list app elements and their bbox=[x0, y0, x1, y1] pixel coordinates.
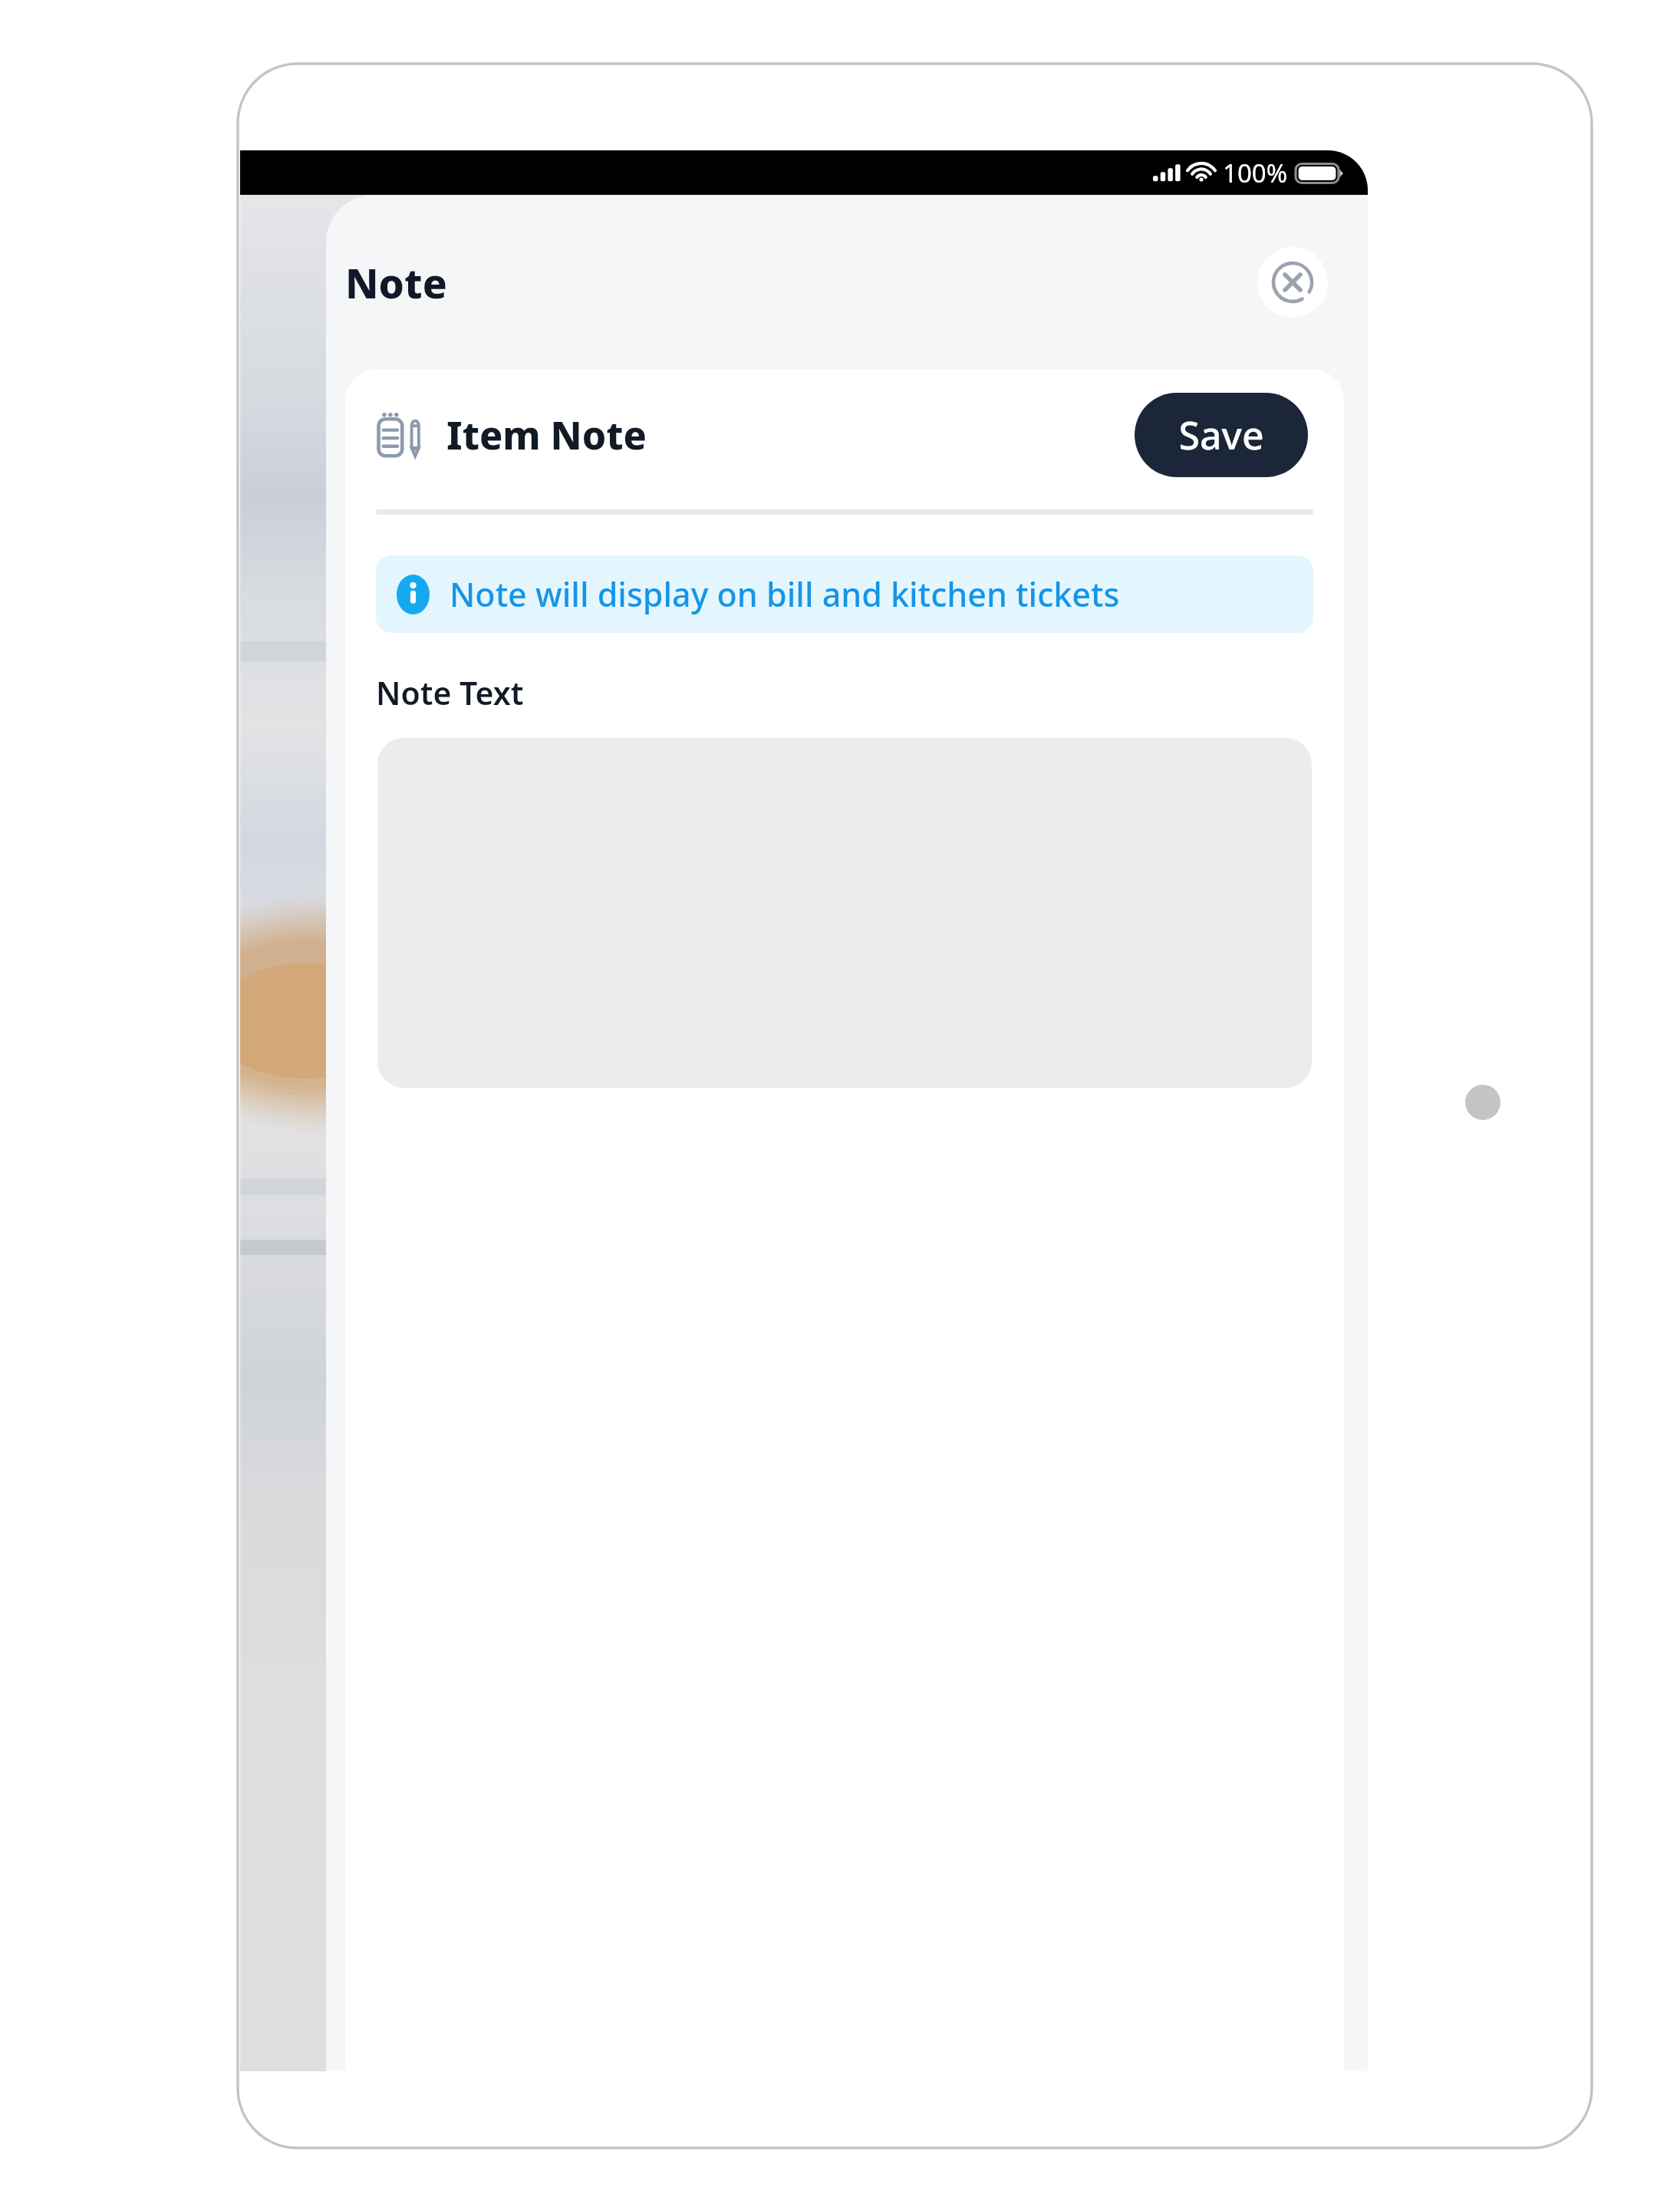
staticText: Item Note bbox=[446, 409, 647, 461]
staticText: Note will display on bill and kitchen ti… bbox=[450, 572, 1120, 617]
staticText: 100% bbox=[1223, 156, 1288, 190]
staticText: Note Text bbox=[376, 671, 524, 714]
staticText: Note bbox=[345, 255, 447, 310]
button[interactable]: Close bbox=[1257, 247, 1328, 318]
staticText: Save bbox=[1178, 409, 1264, 461]
button[interactable]: Save bbox=[1135, 393, 1308, 477]
